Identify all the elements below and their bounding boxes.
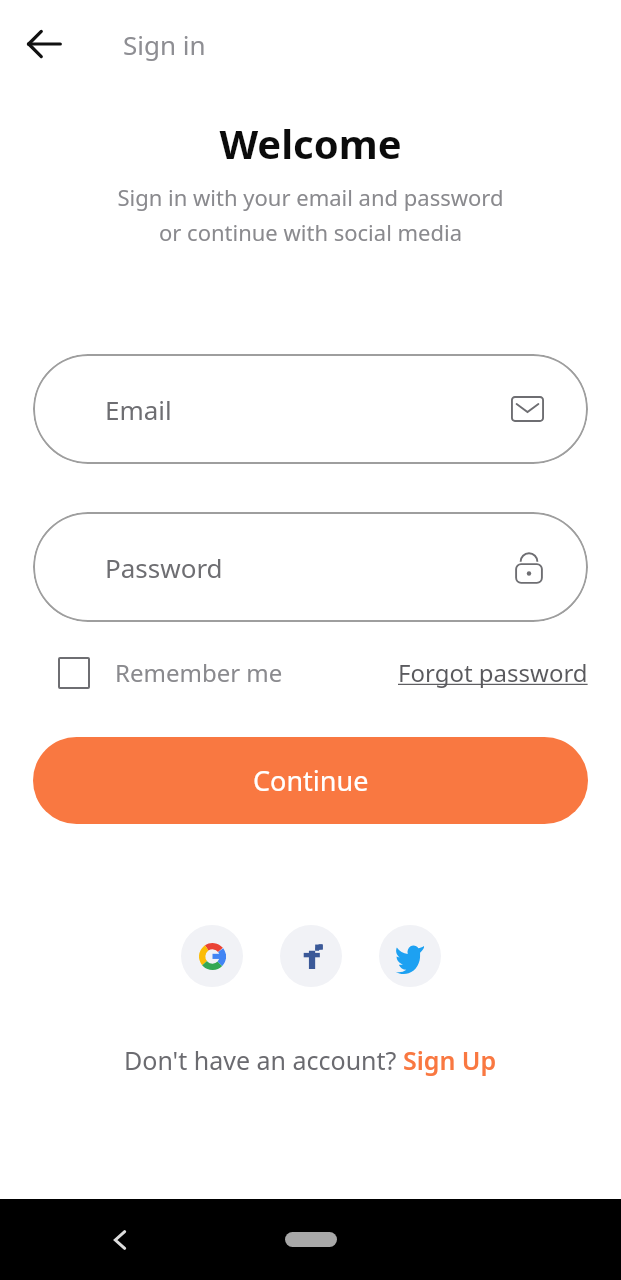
button[interactable]: Forgot password bbox=[398, 650, 588, 695]
button[interactable]: Sign in with Twitter bbox=[379, 925, 441, 987]
button[interactable]: Continue bbox=[33, 737, 588, 824]
button[interactable]: Back bbox=[16, 16, 72, 72]
button[interactable]: Remember me bbox=[33, 650, 285, 695]
button[interactable]: Back bbox=[96, 1216, 144, 1264]
other: Email bbox=[511, 396, 544, 422]
other: Password bbox=[514, 549, 544, 585]
button[interactable]: Don't have an account? Sign Up bbox=[120, 1039, 501, 1081]
button[interactable]: Email bbox=[33, 354, 588, 464]
staticText: Password bbox=[105, 550, 223, 585]
staticText: Email bbox=[105, 392, 172, 427]
staticText: Forgot password bbox=[398, 656, 588, 689]
button[interactable]: Sign in with Facebook bbox=[280, 925, 342, 987]
staticText: Sign in bbox=[123, 27, 206, 62]
staticText: Don't have an account? Sign Up bbox=[124, 1043, 497, 1077]
staticText: Continue bbox=[253, 762, 369, 799]
staticText: Sign in with your email and password or … bbox=[24, 182, 597, 248]
button[interactable]: Home bbox=[285, 1232, 337, 1247]
staticText: Welcome bbox=[0, 116, 621, 170]
staticText: Remember me bbox=[115, 656, 283, 689]
button[interactable]: Password bbox=[33, 512, 588, 622]
button[interactable]: Sign in with Google bbox=[181, 925, 243, 987]
